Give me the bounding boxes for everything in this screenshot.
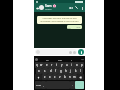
staticText: f — [55, 69, 56, 73]
button[interactable]: . — [70, 81, 75, 89]
staticText: the — [58, 58, 62, 61]
button[interactable]: t — [54, 62, 59, 68]
staticText: x — [49, 75, 51, 79]
button[interactable]: a — [36, 68, 42, 74]
staticText: l — [80, 69, 81, 73]
button[interactable]: v — [57, 74, 62, 80]
button[interactable]: s — [42, 68, 48, 74]
staticText: I — [71, 58, 72, 61]
button[interactable]: Call — [74, 5, 79, 10]
staticText: d — [50, 69, 52, 73]
button[interactable]: d — [48, 68, 53, 74]
button[interactable]: Messages and calls are end-to-end encryp… — [39, 17, 80, 23]
button[interactable]: Camera — [73, 51, 76, 54]
button[interactable]: e — [44, 62, 49, 68]
staticText: 10:24 — [76, 26, 81, 28]
staticText: Hi — [68, 26, 71, 29]
staticText: online — [45, 8, 52, 11]
button[interactable]: g — [58, 68, 63, 74]
button[interactable]: p — [79, 62, 84, 68]
staticText: c — [54, 75, 56, 79]
staticText: m — [73, 75, 76, 79]
staticText: Sam 🌸 — [45, 4, 57, 8]
staticText: y — [61, 63, 63, 67]
staticText: v — [59, 75, 61, 79]
button[interactable]: Google — [35, 58, 38, 61]
button[interactable]: c — [52, 74, 57, 80]
staticText: o — [76, 63, 78, 67]
button[interactable]: y — [59, 62, 64, 68]
button[interactable]: More options — [80, 6, 84, 10]
staticText: q — [36, 63, 38, 67]
button[interactable]: q — [35, 62, 39, 68]
button[interactable]: m — [72, 74, 77, 80]
button[interactable]: Emoji — [36, 50, 40, 54]
button[interactable]: i — [69, 62, 74, 68]
button[interactable]: n — [67, 74, 72, 80]
button[interactable]: r — [49, 62, 54, 68]
staticText: b — [64, 75, 66, 79]
button[interactable]: k — [73, 68, 78, 74]
staticText: u — [66, 63, 68, 67]
staticText: g — [60, 69, 62, 73]
staticText: t — [56, 63, 58, 67]
button[interactable]: Backspace — [77, 74, 84, 80]
staticText: e — [46, 63, 48, 67]
staticText: p — [81, 63, 83, 67]
staticText: , — [43, 84, 44, 87]
button[interactable]: j — [68, 68, 73, 74]
staticText: . — [72, 84, 73, 87]
button[interactable]: , — [41, 81, 46, 89]
button[interactable]: Emoji — [36, 49, 76, 55]
staticText: to — [46, 58, 49, 61]
button[interactable]: Profile photo — [39, 5, 44, 10]
button[interactable]: l — [78, 68, 83, 74]
button[interactable]: o — [74, 62, 79, 68]
button[interactable]: b — [62, 74, 67, 80]
button[interactable]: Attach — [69, 51, 72, 54]
button[interactable]: Sam 🌸 — [45, 4, 68, 11]
button[interactable]: ?123 — [35, 81, 41, 89]
staticText: Messages and calls are end-to-end encryp… — [39, 17, 80, 23]
button[interactable]: Video call — [68, 5, 73, 10]
button[interactable]: x — [47, 74, 52, 80]
staticText: n — [69, 75, 71, 79]
button[interactable]: Expand — [81, 58, 84, 61]
staticText: ?123 — [36, 84, 41, 87]
staticText: k — [75, 69, 77, 73]
button[interactable]: Voice message — [78, 49, 84, 55]
button[interactable]: w — [39, 62, 44, 68]
button[interactable]: f — [53, 68, 58, 74]
button[interactable]: Key — [75, 81, 84, 89]
staticText: a — [38, 69, 40, 73]
staticText: r — [51, 63, 53, 67]
staticText: z — [44, 75, 46, 79]
staticText: s — [44, 69, 46, 73]
staticText: i — [71, 63, 72, 67]
button[interactable]: Hi — [68, 25, 81, 29]
button[interactable]: Back — [35, 6, 39, 10]
button[interactable]: z — [42, 74, 47, 80]
staticText: j — [70, 69, 71, 73]
button[interactable]: Shift — [35, 74, 42, 80]
staticText: w — [40, 63, 43, 67]
staticText: h — [65, 69, 67, 73]
button[interactable]: h — [63, 68, 68, 74]
button[interactable]: u — [64, 62, 69, 68]
